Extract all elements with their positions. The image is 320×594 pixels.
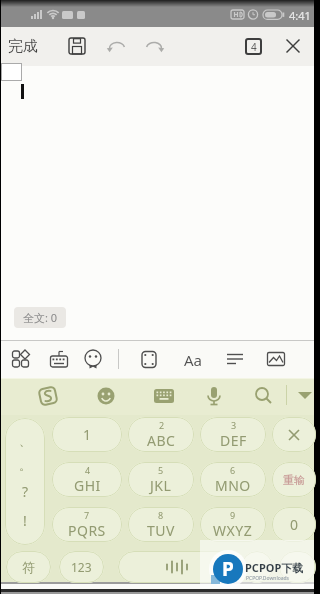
staticText: DEF <box>220 431 247 450</box>
staticText: 符 <box>22 559 35 575</box>
button[interactable] <box>143 35 165 57</box>
staticText: JKL <box>150 476 172 495</box>
button[interactable] <box>296 388 316 404</box>
button[interactable]: 5 <box>128 462 194 497</box>
staticText: 完成 <box>8 37 38 56</box>
button[interactable] <box>241 551 273 583</box>
staticText: 3 <box>231 419 237 431</box>
staticText: P <box>222 556 234 582</box>
button[interactable] <box>283 36 303 56</box>
staticText: MNO <box>215 476 251 495</box>
button[interactable]: 2 <box>128 417 194 452</box>
button[interactable] <box>252 384 274 408</box>
staticText: 0 <box>290 515 299 534</box>
button[interactable] <box>138 348 160 370</box>
button[interactable] <box>224 348 246 370</box>
button[interactable]: 重输 <box>272 462 316 497</box>
staticText: 4 <box>251 40 257 54</box>
button[interactable]: 1 <box>52 417 122 452</box>
button[interactable] <box>203 384 225 408</box>
button[interactable] <box>272 417 316 452</box>
button[interactable]: 0 <box>272 507 316 542</box>
button[interactable]: Aa <box>180 341 206 378</box>
staticText: 2 <box>159 419 165 431</box>
button[interactable] <box>106 35 128 57</box>
staticText: 7 <box>84 509 90 521</box>
button[interactable] <box>66 35 88 57</box>
button[interactable] <box>265 348 287 370</box>
staticText: PQRS <box>68 521 106 540</box>
button[interactable]: 8 <box>128 507 194 542</box>
staticText: 、 <box>19 433 31 448</box>
staticText: ? <box>22 482 29 501</box>
button[interactable]: 123 <box>59 551 104 583</box>
staticText: PCPOP下载 <box>245 560 304 575</box>
button[interactable]: 完成 <box>8 27 48 66</box>
staticText: 8 <box>158 509 164 521</box>
staticText: 123 <box>71 559 92 575</box>
staticText: 重输 <box>283 473 305 487</box>
button[interactable] <box>36 384 60 408</box>
button[interactable] <box>152 386 176 406</box>
staticText: Aa <box>184 350 203 370</box>
staticText: 9 <box>230 509 236 521</box>
staticText: ! <box>23 511 27 530</box>
staticText: WXYZ <box>213 521 253 540</box>
staticText: 。 <box>19 458 31 473</box>
staticText: 6 <box>230 464 236 476</box>
staticText: 5 <box>158 464 164 476</box>
button[interactable] <box>48 348 70 370</box>
button[interactable]: 、 <box>5 418 45 545</box>
button[interactable]: 4 <box>245 38 262 55</box>
button[interactable]: 符 <box>6 551 51 583</box>
button[interactable]: 3 <box>200 417 266 452</box>
staticText: 1 <box>83 425 92 444</box>
button[interactable] <box>279 551 316 583</box>
button[interactable]: 9 <box>200 507 266 542</box>
staticText: 4:41 <box>289 8 311 23</box>
button[interactable] <box>118 551 235 583</box>
staticText: 4 <box>85 464 91 476</box>
button[interactable] <box>82 348 104 370</box>
button[interactable]: 7 <box>52 507 122 542</box>
staticText: 全文: 0 <box>23 310 58 325</box>
button[interactable] <box>10 348 32 370</box>
staticText: TUV <box>147 521 175 540</box>
button[interactable] <box>95 385 117 407</box>
button[interactable]: 4 <box>52 462 122 497</box>
staticText: PCPOP.Downloads <box>246 575 290 582</box>
staticText: ABC <box>147 431 176 450</box>
button[interactable]: 6 <box>200 462 266 497</box>
staticText: GHI <box>74 476 101 495</box>
